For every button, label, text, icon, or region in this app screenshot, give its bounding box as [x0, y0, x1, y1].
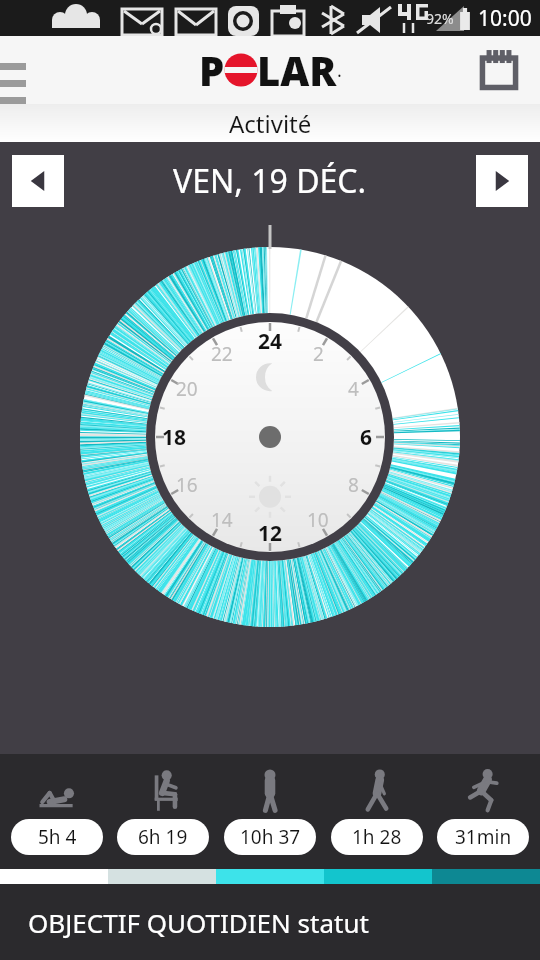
- button[interactable]: 6h 19: [113, 768, 213, 855]
- staticText: 14: [211, 507, 233, 533]
- staticText: 1h 28: [352, 824, 402, 850]
- button[interactable]: Next day: [476, 155, 528, 207]
- staticText: P: [199, 43, 225, 97]
- button[interactable]: 31min: [433, 768, 533, 855]
- button[interactable]: Previous day: [12, 155, 64, 207]
- button[interactable]: Diary: [476, 47, 522, 93]
- staticText: OBJECTIF QUOTIDIEN statut: [28, 905, 369, 940]
- staticText: 10:00: [478, 4, 532, 33]
- staticText: 10h 37: [240, 824, 301, 850]
- staticText: 24: [258, 327, 283, 355]
- staticText: 5h 4: [38, 824, 77, 850]
- button[interactable]: 1h 28: [327, 768, 427, 855]
- staticText: 4: [348, 376, 359, 402]
- staticText: 92%: [426, 9, 454, 28]
- staticText: 20: [176, 376, 198, 402]
- button[interactable]: Menu: [0, 43, 40, 97]
- staticText: 10: [307, 507, 329, 533]
- staticText: 6: [360, 423, 373, 451]
- staticText: 16: [176, 472, 198, 498]
- staticText: 22: [211, 341, 233, 367]
- staticText: 31min: [455, 824, 512, 850]
- staticText: Activité: [229, 107, 312, 140]
- staticText: LAR: [257, 43, 337, 97]
- staticText: 8: [348, 472, 359, 498]
- staticText: 18: [162, 423, 187, 451]
- staticText: 6h 19: [138, 824, 188, 850]
- staticText: 2: [313, 341, 324, 367]
- staticText: VEN, 19 DÉC.: [173, 159, 367, 203]
- staticText: .: [337, 58, 342, 83]
- button[interactable]: 10h 37: [220, 768, 320, 855]
- button[interactable]: 5h 4: [7, 768, 107, 855]
- staticText: 12: [258, 519, 283, 547]
- button[interactable]: OBJECTIF QUOTIDIEN statut: [0, 884, 540, 960]
